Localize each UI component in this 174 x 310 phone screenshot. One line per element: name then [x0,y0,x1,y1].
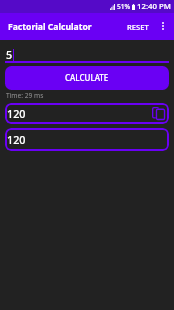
button[interactable]: RESET [123,17,153,37]
staticText: 120 [7,132,26,147]
staticText: Factorial Calculator [8,21,92,33]
staticText: Time: 29 ms [6,91,44,100]
staticText: 12:40 PM [137,1,171,12]
button[interactable]: CALCULATE [5,66,169,90]
staticText: 120 [7,106,26,121]
staticText: 51% [117,2,131,11]
staticText: 5 [6,47,13,62]
button[interactable]: More options [153,17,173,37]
staticText: CALCULATE [65,72,109,83]
staticText: RESET [127,22,149,32]
button[interactable]: Copy [151,105,166,121]
